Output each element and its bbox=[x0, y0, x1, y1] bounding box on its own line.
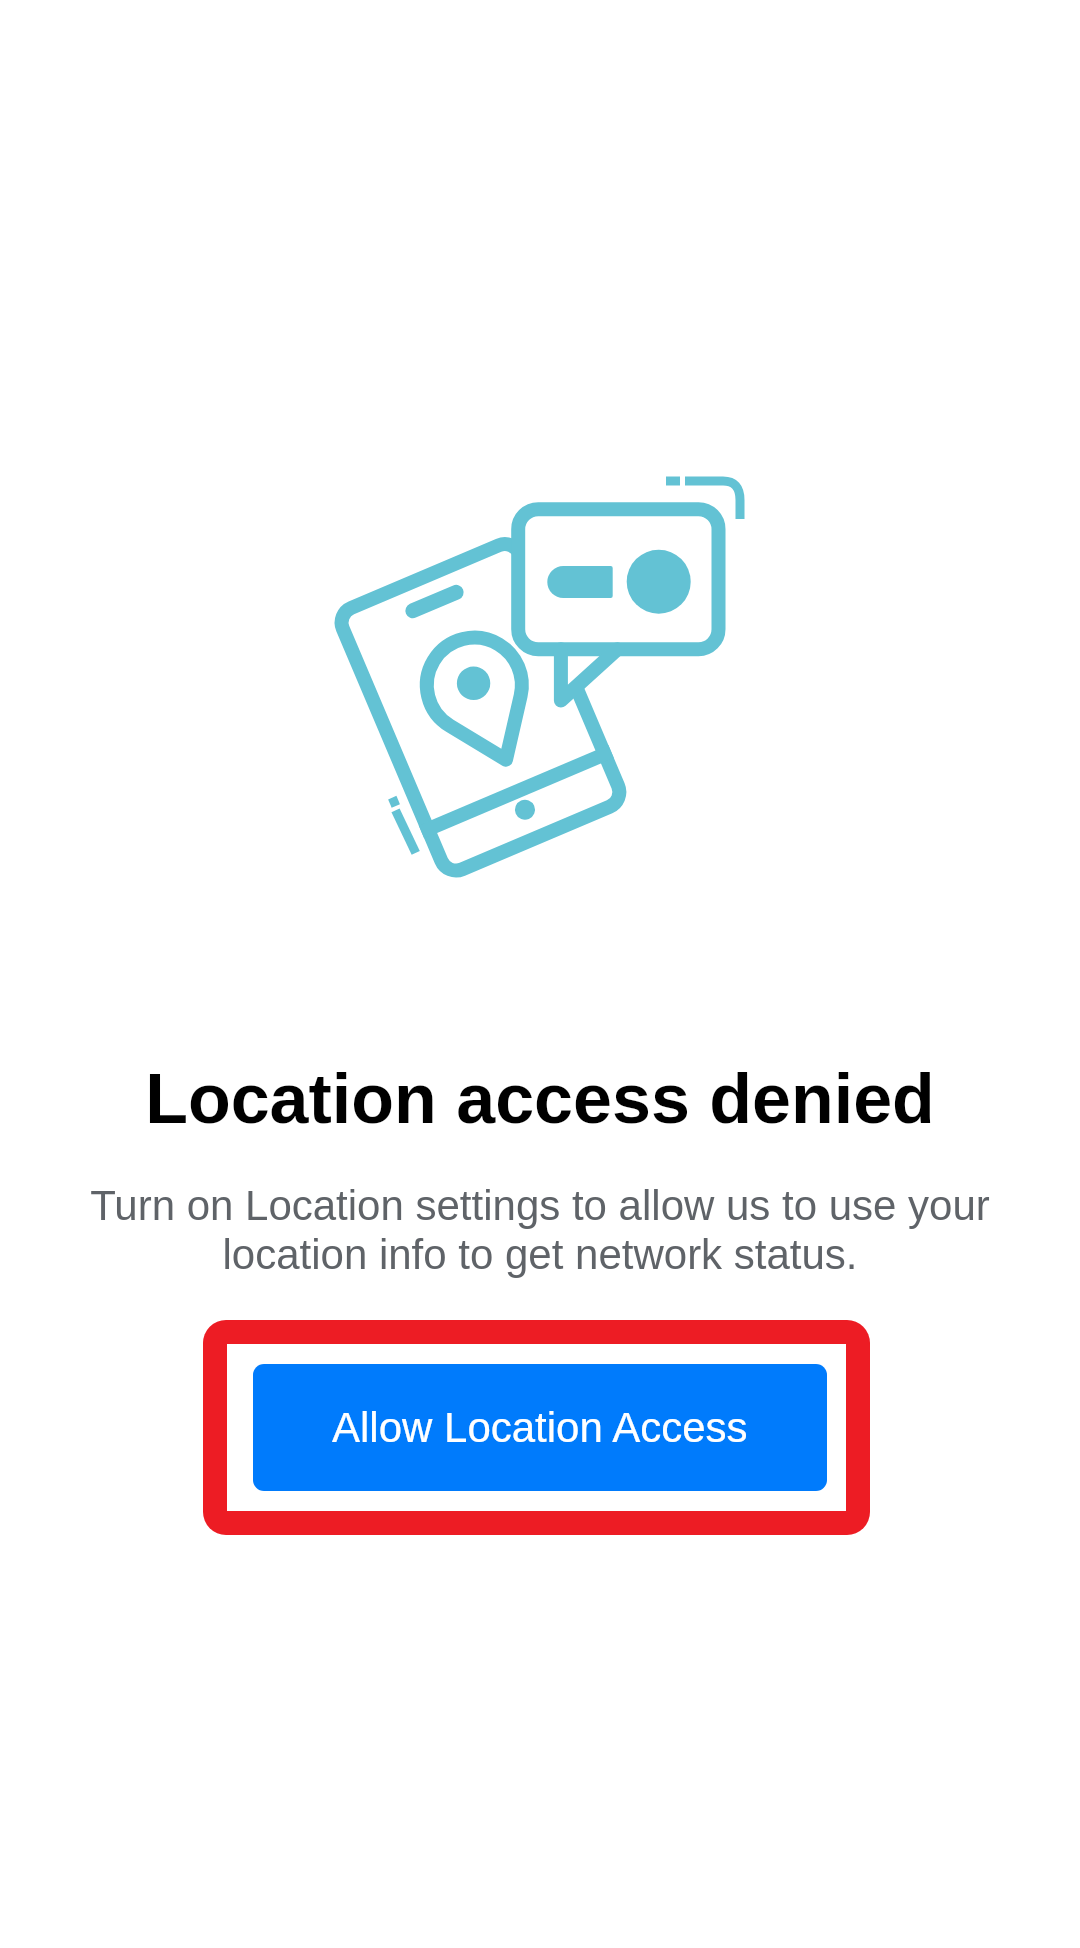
staticText: Location access denied bbox=[0, 1060, 1080, 1948]
other: Location permission illustration bbox=[0, 0, 1080, 1948]
staticText: Allow Location Access bbox=[332, 1404, 748, 1451]
staticText: Turn on Location settings to allow us to… bbox=[60, 1182, 1020, 1278]
button[interactable]: Allow Location Access bbox=[253, 1364, 827, 1491]
